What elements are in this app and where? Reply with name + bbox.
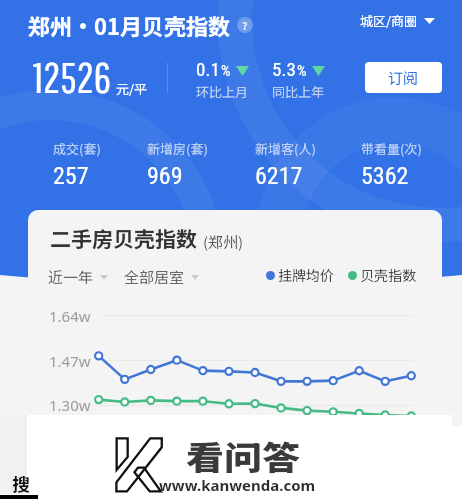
- staticText: 1.47w: [49, 351, 91, 371]
- staticText: 969: [147, 162, 183, 190]
- staticText: (郑州): [203, 231, 244, 253]
- button[interactable]: 说明: [237, 17, 253, 33]
- staticText: 环比上月: [196, 82, 249, 101]
- staticText: %: [297, 62, 307, 80]
- staticText: 看问答: [186, 432, 300, 480]
- staticText: 贝壳指数: [360, 265, 416, 285]
- button[interactable]: 近一年: [48, 266, 108, 288]
- staticText: 成交(套): [53, 139, 101, 158]
- staticText: 0.1: [196, 58, 220, 80]
- staticText: 同比上年: [272, 82, 325, 101]
- staticText: 近一年: [48, 266, 94, 288]
- staticText: 搜: [12, 470, 30, 496]
- staticText: 二手房贝壳指数: [50, 223, 197, 253]
- staticText: 6217: [255, 162, 303, 190]
- staticText: 带看量(次): [361, 139, 422, 158]
- staticText: 5362: [361, 162, 409, 190]
- staticText: 12526: [33, 52, 112, 102]
- staticText: 新增客(人): [255, 139, 316, 158]
- staticText: 257: [53, 162, 89, 190]
- staticText: 1.64w: [49, 306, 91, 326]
- staticText: 挂牌均价: [278, 265, 334, 285]
- staticText: 新增房(套): [147, 139, 208, 158]
- button[interactable]: 郑州·01月贝壳指数: [28, 9, 253, 41]
- staticText: 郑州·01月贝壳指数: [28, 9, 230, 41]
- staticText: 元/平: [116, 79, 148, 98]
- button[interactable]: 订阅: [365, 62, 442, 93]
- staticText: www.kanwenda.com: [159, 475, 316, 495]
- staticText: 5.3: [272, 58, 296, 80]
- button[interactable]: 全部居室: [124, 266, 199, 288]
- staticText: 城区/商圈: [360, 11, 418, 30]
- staticText: 全部居室: [124, 266, 185, 288]
- staticText: ?: [242, 17, 248, 33]
- staticText: %: [221, 62, 231, 80]
- staticText: 订阅: [388, 67, 419, 89]
- staticText: 1.30w: [49, 395, 91, 415]
- button[interactable]: 城区/商圈: [360, 11, 435, 30]
